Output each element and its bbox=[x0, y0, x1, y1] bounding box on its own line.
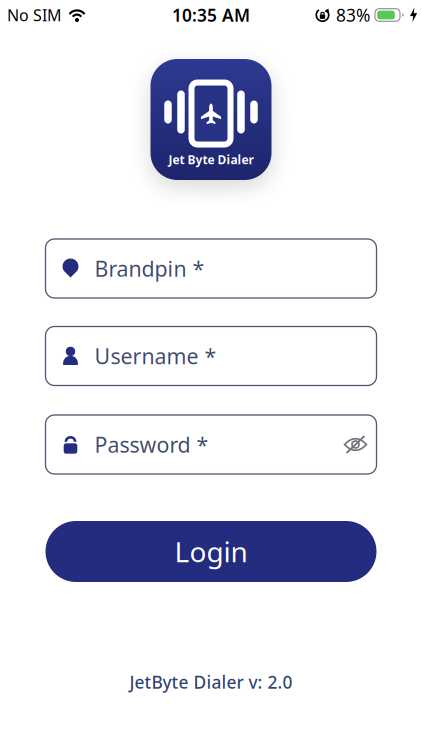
staticText: Jet Byte Dialer bbox=[168, 151, 253, 167]
staticText: 83% bbox=[336, 3, 370, 26]
staticText: 10:35 AM bbox=[172, 3, 250, 26]
staticText: Login bbox=[174, 533, 247, 570]
staticText: Password * bbox=[94, 430, 208, 459]
button[interactable]: Username * bbox=[45, 326, 376, 385]
staticText: JetByte Dialer v: 2.0 bbox=[129, 670, 292, 693]
staticText: Brandpin * bbox=[94, 254, 204, 283]
button[interactable]: Brandpin * bbox=[45, 239, 376, 298]
button[interactable]: Login bbox=[45, 521, 376, 582]
staticText: No SIM bbox=[7, 4, 62, 26]
button[interactable]: Password * bbox=[45, 415, 376, 474]
staticText: Username * bbox=[94, 342, 216, 370]
